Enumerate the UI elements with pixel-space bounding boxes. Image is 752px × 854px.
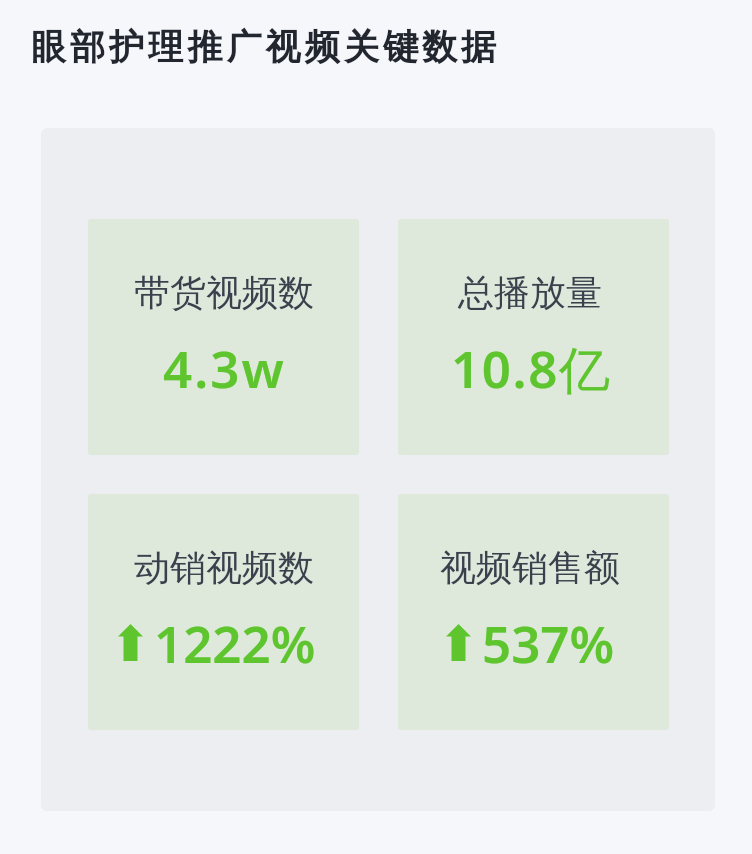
staticText: 4.3w [163,333,286,402]
button[interactable]: 带货视频数 [88,219,359,455]
staticText: 动销视频数 [134,545,314,590]
button[interactable]: 动销视频数 [88,494,359,730]
staticText: 10.8亿 [451,333,612,403]
button[interactable]: 视频销售额 [398,494,669,730]
staticText: 眼部护理推广视频关键数据 [31,25,501,69]
other: Increase [446,624,471,661]
staticText: 总播放量 [458,270,602,315]
button[interactable]: 总播放量 [398,219,669,455]
other: Increase [118,624,143,661]
staticText: 1222% [154,608,316,677]
staticText: 537% [482,608,615,677]
staticText: 带货视频数 [134,270,314,315]
staticText: 视频销售额 [440,545,620,590]
